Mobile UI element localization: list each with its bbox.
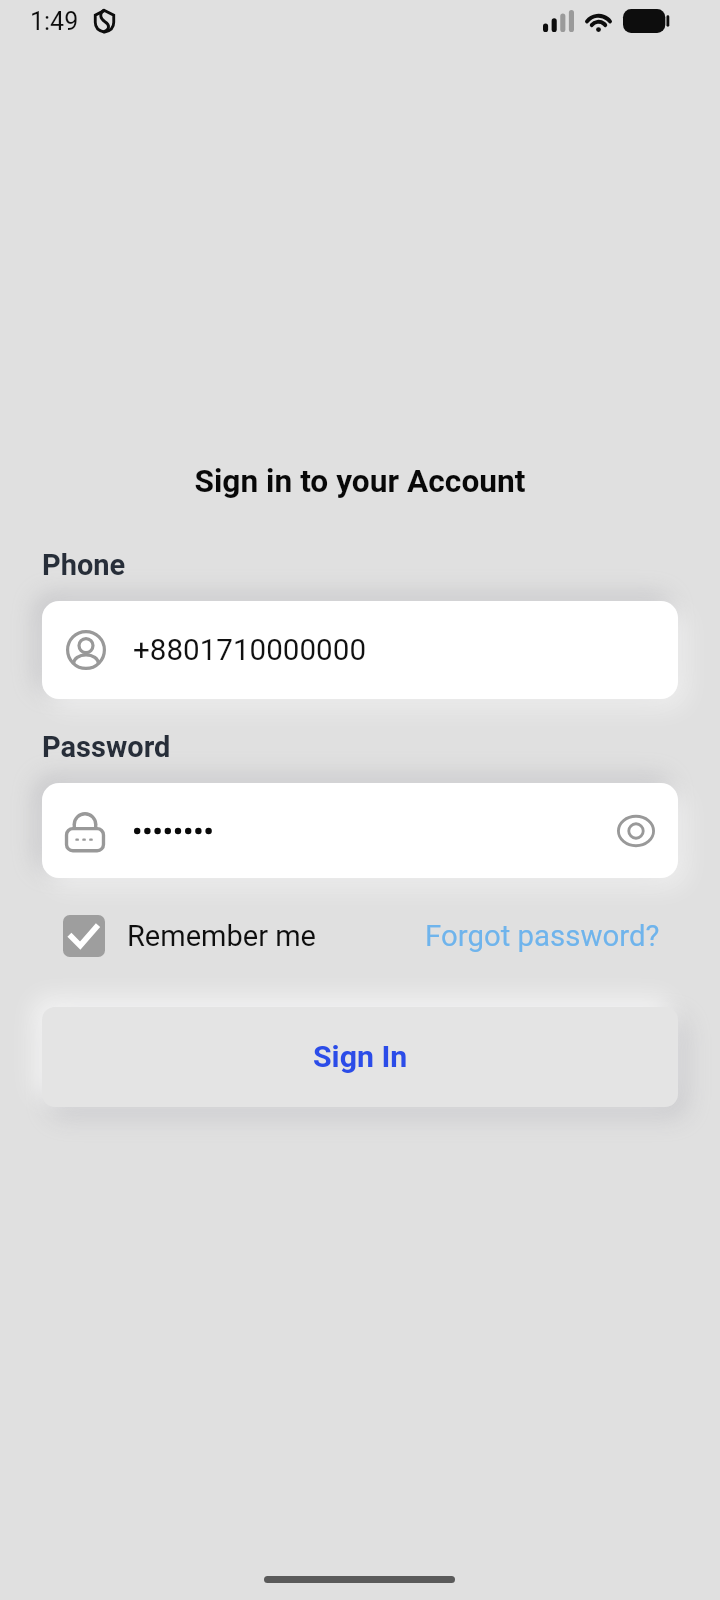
button[interactable]: Remember me	[63, 915, 316, 957]
other: Mobile signal	[543, 10, 574, 32]
staticText: Sign In	[313, 1039, 408, 1075]
button[interactable]: Show password	[607, 802, 665, 860]
button[interactable]: +8801710000000	[42, 601, 678, 699]
button[interactable]: Forgot password?	[425, 919, 660, 953]
staticText: Sign in to your Account	[0, 463, 720, 500]
staticText: +8801710000000	[133, 633, 367, 668]
button[interactable]: Sign In	[42, 1007, 678, 1107]
staticText: Remember me	[127, 919, 316, 953]
other: VPN active	[94, 9, 115, 33]
staticText: 1:49	[30, 7, 79, 36]
staticText: Password	[42, 730, 171, 764]
staticText: Forgot password?	[425, 919, 660, 953]
button[interactable]: Show password	[42, 802, 678, 860]
other: Battery full	[623, 9, 670, 33]
staticText: Phone	[42, 548, 126, 582]
other: Wi-Fi	[583, 8, 614, 32]
